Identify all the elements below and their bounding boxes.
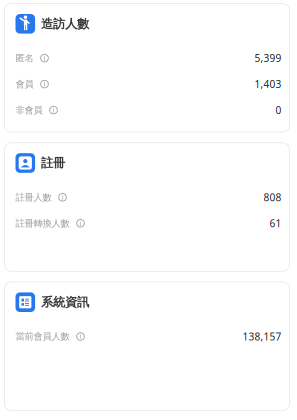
staticText: 註冊人數: [15, 191, 51, 203]
button[interactable]: 當前會員人數: [15, 323, 281, 349]
staticText: 5,399: [254, 51, 281, 65]
staticText: 匿名: [15, 52, 33, 64]
button[interactable]: 非會員: [15, 97, 281, 123]
button[interactable]: 會員: [15, 71, 281, 97]
staticText: i: [52, 106, 54, 115]
staticText: i: [43, 54, 45, 63]
staticText: 註冊: [41, 155, 65, 171]
staticText: 系統資訊: [41, 294, 89, 310]
button[interactable]: 註冊轉換人數: [15, 210, 281, 236]
staticText: 1,403: [254, 77, 281, 91]
staticText: 138,157: [242, 330, 281, 343]
staticText: 61: [269, 216, 281, 230]
staticText: i: [79, 219, 81, 228]
staticText: 808: [263, 190, 281, 204]
button[interactable]: 註冊人數: [15, 184, 281, 210]
staticText: i: [79, 332, 81, 341]
button[interactable]: 匿名: [15, 45, 281, 71]
staticText: 註冊轉換人數: [15, 217, 69, 229]
staticText: 造訪人數: [41, 16, 89, 32]
staticText: 當前會員人數: [15, 331, 69, 342]
staticText: 會員: [15, 78, 33, 90]
staticText: i: [61, 193, 63, 202]
staticText: i: [43, 80, 45, 89]
staticText: 非會員: [15, 104, 42, 116]
staticText: 0: [275, 103, 281, 117]
